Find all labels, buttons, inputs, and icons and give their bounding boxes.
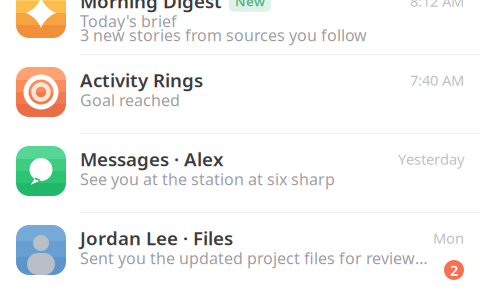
- staticText: See you at the station at six sharp: [80, 168, 335, 190]
- staticText: 2: [450, 260, 458, 280]
- button[interactable]: Jordan Lee · Files: [0, 213, 480, 291]
- staticText: 7:40 AM: [410, 70, 464, 90]
- staticText: New: [235, 0, 265, 10]
- staticText: Mon: [433, 228, 464, 248]
- staticText: Morning Digest: [80, 0, 222, 13]
- staticText: Messages · Alex: [80, 147, 223, 171]
- staticText: Sent you the updated project files for r…: [80, 247, 428, 269]
- staticText: 8:12 AM: [410, 0, 464, 11]
- button[interactable]: Messages · Alex: [0, 134, 480, 212]
- staticText: Activity Rings: [80, 68, 203, 92]
- staticText: Yesterday: [398, 149, 464, 169]
- staticText: Goal reached: [80, 89, 180, 111]
- staticText: Today's brief: [80, 10, 177, 32]
- button[interactable]: Morning Digest: [0, 0, 480, 54]
- staticText: 3 new stories from sources you follow: [80, 24, 367, 46]
- button[interactable]: Activity Rings: [0, 55, 480, 133]
- staticText: Jordan Lee · Files: [80, 226, 233, 250]
